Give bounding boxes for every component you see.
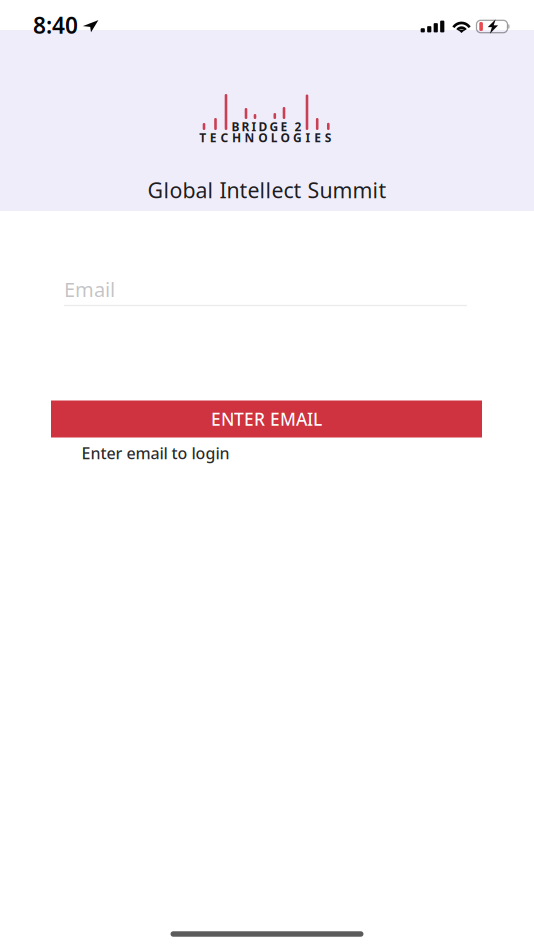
button[interactable]: ENTER EMAIL	[51, 400, 482, 437]
staticText: ENTER EMAIL	[211, 407, 322, 430]
staticText: TECHNOLOGIES	[199, 129, 332, 145]
staticText: BRIDGE 2	[231, 118, 301, 134]
staticText: 8:40	[33, 10, 78, 40]
staticText: Global Intellect Summit	[147, 176, 386, 204]
staticText: Email	[64, 276, 115, 303]
button[interactable]: Email	[64, 278, 467, 306]
staticText: Enter email to login	[81, 442, 229, 464]
